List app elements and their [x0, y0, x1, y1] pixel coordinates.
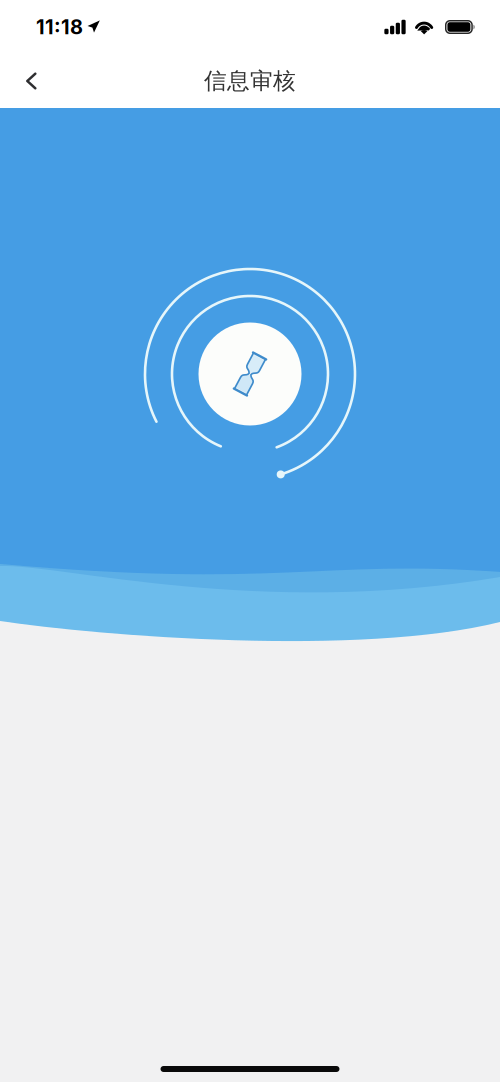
button[interactable]: Back	[0, 58, 57, 103]
staticText: 信息审核	[204, 67, 296, 95]
staticText: 11:18	[36, 15, 83, 39]
